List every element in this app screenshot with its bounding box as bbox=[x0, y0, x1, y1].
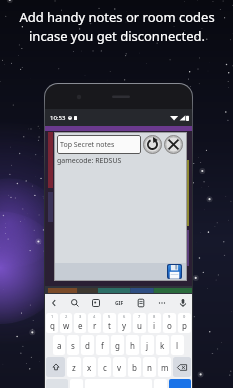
staticText: j bbox=[146, 340, 149, 351]
button[interactable]: Backspace bbox=[173, 357, 191, 377]
button[interactable]: m bbox=[158, 357, 171, 377]
staticText: 8 bbox=[153, 314, 156, 319]
button[interactable]: z bbox=[67, 357, 81, 377]
staticText: 10:53 bbox=[50, 114, 66, 122]
staticText: 0 bbox=[183, 314, 186, 319]
button[interactable]: l bbox=[171, 335, 184, 355]
staticText: x bbox=[87, 362, 92, 373]
button[interactable]: 1 bbox=[46, 313, 58, 333]
button[interactable]: Voice input bbox=[178, 298, 188, 308]
staticText: r bbox=[93, 320, 97, 331]
button[interactable]: Back bbox=[49, 298, 59, 308]
button[interactable]: 4 bbox=[88, 313, 101, 333]
staticText: k bbox=[160, 340, 165, 351]
button[interactable]: 5 bbox=[103, 313, 116, 333]
staticText: w bbox=[63, 320, 70, 331]
button[interactable]: Clipboard bbox=[136, 298, 146, 308]
staticText: o bbox=[167, 320, 172, 331]
staticText: s bbox=[71, 340, 75, 351]
button[interactable]: GIF bbox=[113, 298, 125, 308]
button[interactable]: h bbox=[126, 335, 139, 355]
button[interactable]: 6 bbox=[118, 313, 131, 333]
staticText: Top Secret notes bbox=[60, 140, 115, 150]
button[interactable]: Top Secret notes bbox=[57, 135, 141, 154]
staticText: z bbox=[72, 362, 76, 373]
button[interactable]: 7 bbox=[133, 313, 146, 333]
staticText: incase you get disconnected. bbox=[29, 27, 205, 45]
button[interactable]: Enter bbox=[169, 379, 191, 388]
staticText: 6 bbox=[123, 314, 126, 319]
staticText: a bbox=[57, 340, 62, 351]
button[interactable]: 0 bbox=[178, 313, 191, 333]
button[interactable]: Shift bbox=[46, 357, 65, 377]
staticText: 3 bbox=[79, 314, 82, 319]
staticText: e bbox=[78, 320, 83, 331]
button[interactable]: s bbox=[67, 335, 79, 355]
button[interactable]: Refresh bbox=[143, 135, 162, 154]
staticText: Add handy notes or room codes bbox=[19, 8, 215, 26]
button[interactable]: k bbox=[156, 335, 169, 355]
staticText: 2 bbox=[65, 314, 68, 319]
button[interactable]: 9 bbox=[163, 313, 176, 333]
staticText: 9 bbox=[168, 314, 171, 319]
staticText: p bbox=[182, 320, 187, 331]
staticText: gamecode: REDSUS bbox=[57, 156, 122, 166]
staticText: t bbox=[108, 320, 111, 331]
button[interactable]: 3 bbox=[74, 313, 86, 333]
button[interactable]: b bbox=[128, 357, 141, 377]
button[interactable]: f bbox=[96, 335, 109, 355]
staticText: i bbox=[153, 320, 156, 331]
staticText: f bbox=[101, 340, 104, 351]
button[interactable]: x bbox=[83, 357, 96, 377]
staticText: m bbox=[161, 362, 169, 373]
button[interactable]: Stickers bbox=[91, 298, 101, 308]
button[interactable]: Save bbox=[167, 264, 182, 279]
staticText: n bbox=[147, 362, 152, 373]
staticText: 4 bbox=[93, 314, 96, 319]
staticText: b bbox=[132, 362, 137, 373]
button[interactable]: 2 bbox=[60, 313, 72, 333]
button[interactable]: Close bbox=[164, 135, 183, 154]
staticText: u bbox=[137, 320, 142, 331]
staticText: 5 bbox=[108, 314, 111, 319]
staticText: 7 bbox=[138, 314, 141, 319]
staticText: d bbox=[85, 340, 90, 351]
staticText: h bbox=[130, 340, 135, 351]
button[interactable]: More bbox=[157, 298, 167, 308]
staticText: q bbox=[50, 320, 55, 331]
button[interactable]: g bbox=[111, 335, 124, 355]
staticText: GIF bbox=[115, 300, 124, 307]
staticText: l bbox=[176, 340, 179, 351]
staticText: 1 bbox=[51, 314, 54, 319]
button[interactable]: n bbox=[143, 357, 156, 377]
button[interactable]: v bbox=[113, 357, 126, 377]
button[interactable]: a bbox=[53, 335, 65, 355]
button[interactable]: d bbox=[81, 335, 94, 355]
staticText: y bbox=[122, 320, 127, 331]
staticText: c bbox=[103, 362, 107, 373]
staticText: v bbox=[117, 362, 122, 373]
button[interactable]: j bbox=[141, 335, 154, 355]
staticText: g bbox=[115, 340, 120, 351]
button[interactable]: Search bbox=[70, 298, 80, 308]
button[interactable]: 8 bbox=[148, 313, 161, 333]
button[interactable]: c bbox=[98, 357, 111, 377]
